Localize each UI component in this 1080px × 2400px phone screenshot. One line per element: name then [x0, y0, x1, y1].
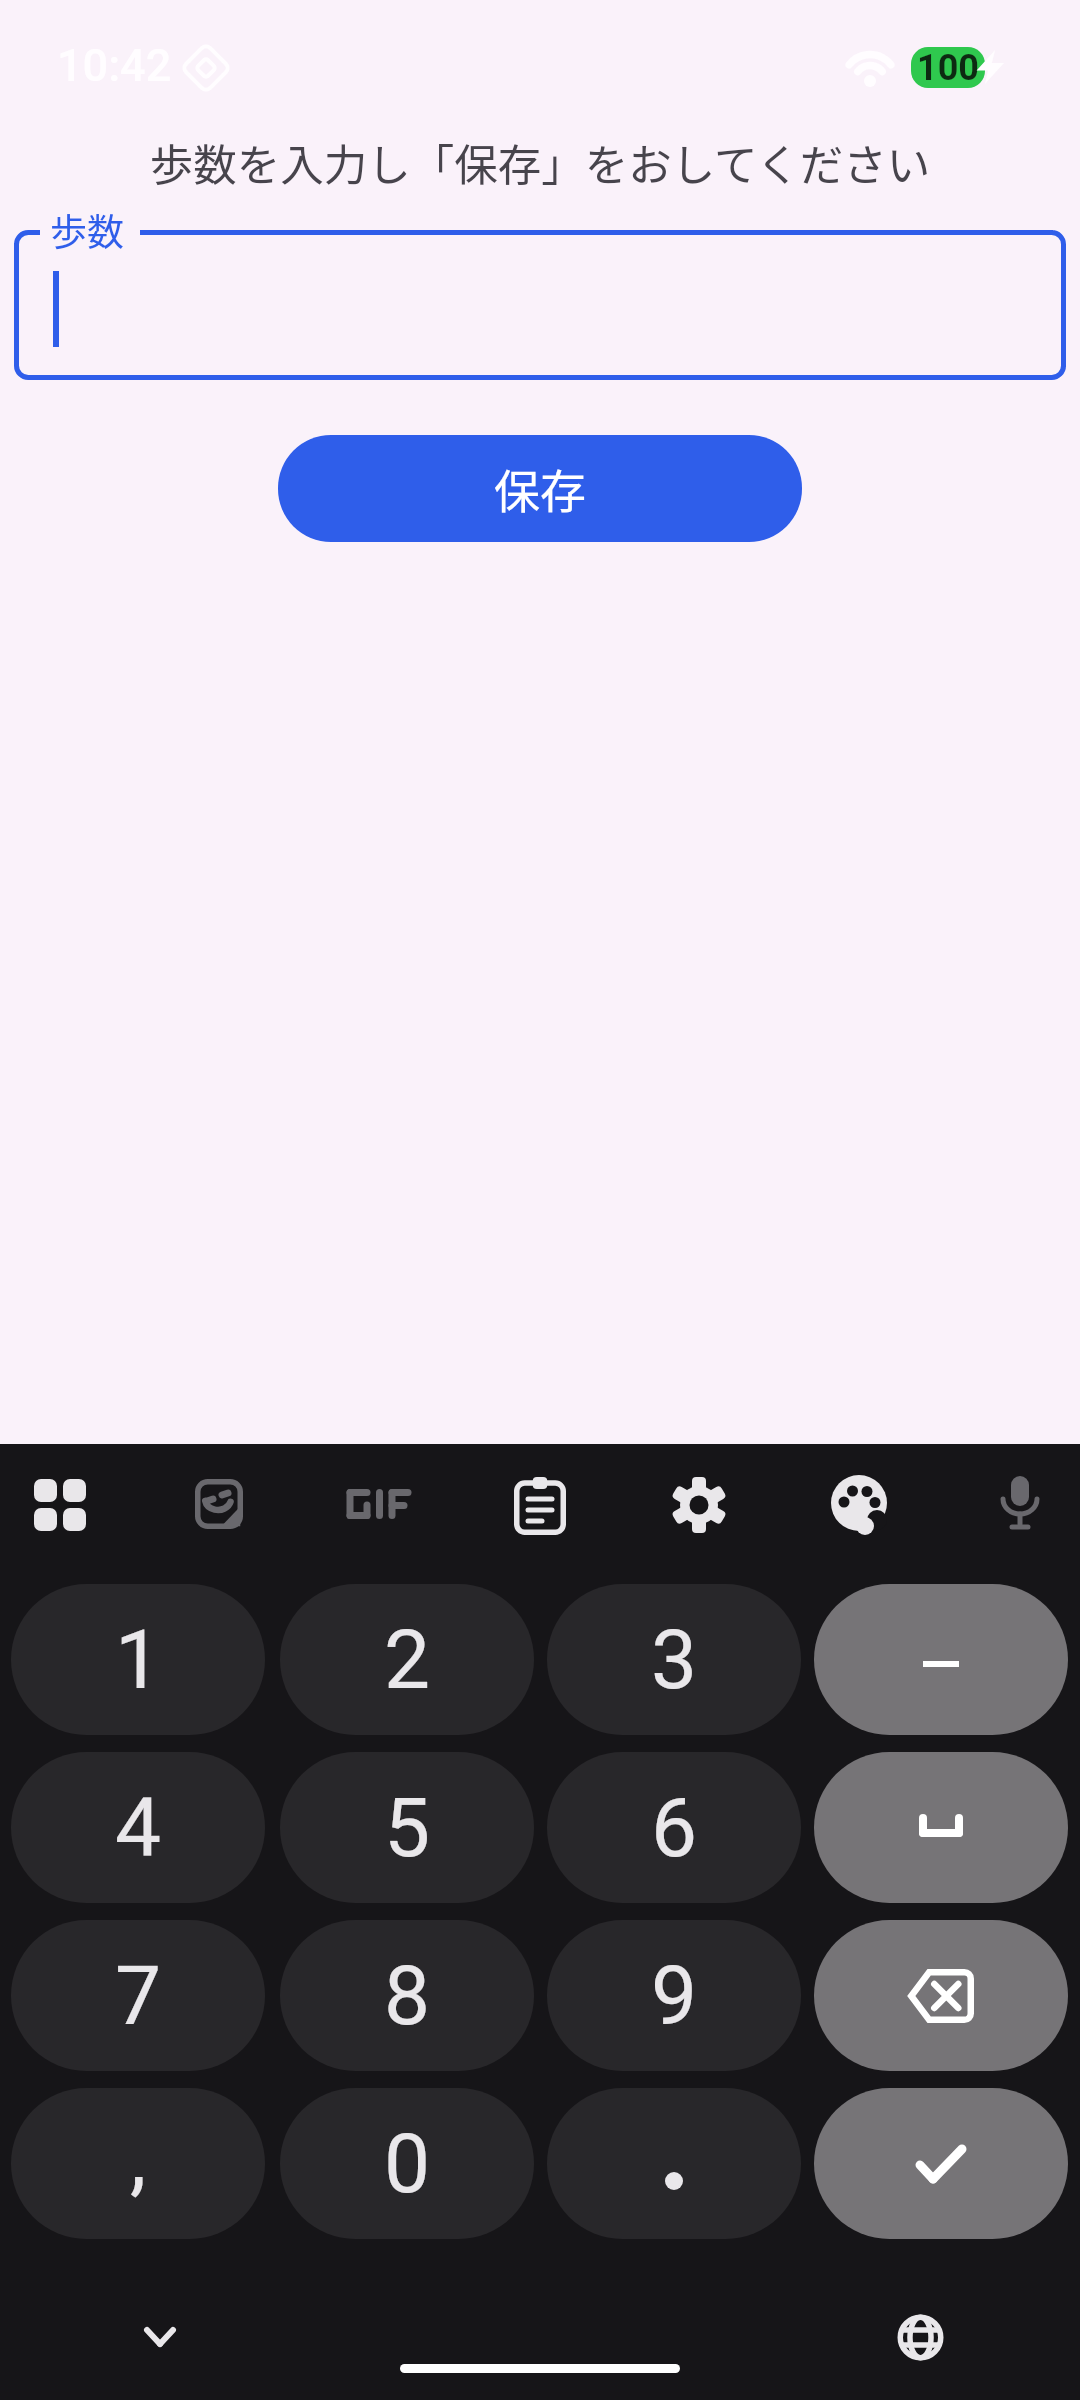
- staticText: 2: [384, 1612, 431, 1708]
- button[interactable]: [144, 2326, 176, 2348]
- staticText: 6: [651, 1780, 698, 1876]
- button[interactable]: [14, 230, 1066, 380]
- staticText: 3: [651, 1612, 698, 1708]
- button[interactable]: 1: [11, 1584, 265, 1735]
- staticText: 9: [651, 1948, 698, 2044]
- button[interactable]: [897, 2314, 944, 2361]
- staticText: 保存: [494, 455, 586, 522]
- button[interactable]: [814, 1584, 1068, 1735]
- staticText: 歩数を入力し「保存」をおしてください: [0, 131, 1080, 194]
- button[interactable]: [195, 1479, 243, 1529]
- button[interactable]: [346, 1489, 412, 1519]
- button[interactable]: 9: [547, 1920, 801, 2071]
- staticText: ,: [130, 2110, 147, 2206]
- button[interactable]: [831, 1475, 888, 1532]
- button[interactable]: [514, 1477, 566, 1535]
- staticText: 5: [384, 1780, 431, 1876]
- button[interactable]: [34, 1479, 86, 1531]
- staticText: 10:42: [57, 39, 172, 92]
- button[interactable]: 保存: [278, 435, 802, 542]
- staticText: 歩数: [50, 203, 124, 257]
- staticText: 100: [917, 47, 979, 88]
- staticText: 1: [115, 1612, 162, 1708]
- button[interactable]: 3: [547, 1584, 801, 1735]
- staticText: 8: [384, 1948, 431, 2044]
- button[interactable]: [814, 1752, 1068, 1903]
- button[interactable]: 2: [280, 1584, 534, 1735]
- button[interactable]: 5: [280, 1752, 534, 1903]
- button[interactable]: [996, 1476, 1044, 1536]
- staticText: 7: [115, 1948, 162, 2044]
- button[interactable]: 0: [280, 2088, 534, 2239]
- button[interactable]: ,: [11, 2088, 265, 2239]
- button[interactable]: [814, 2088, 1068, 2239]
- button[interactable]: [814, 1920, 1068, 2071]
- button[interactable]: 7: [11, 1920, 265, 2071]
- staticText: 4: [115, 1780, 162, 1876]
- button[interactable]: [673, 1476, 725, 1534]
- button[interactable]: [547, 2088, 801, 2239]
- staticText: 0: [384, 2116, 431, 2212]
- button[interactable]: 4: [11, 1752, 265, 1903]
- button[interactable]: 8: [280, 1920, 534, 2071]
- button[interactable]: 6: [547, 1752, 801, 1903]
